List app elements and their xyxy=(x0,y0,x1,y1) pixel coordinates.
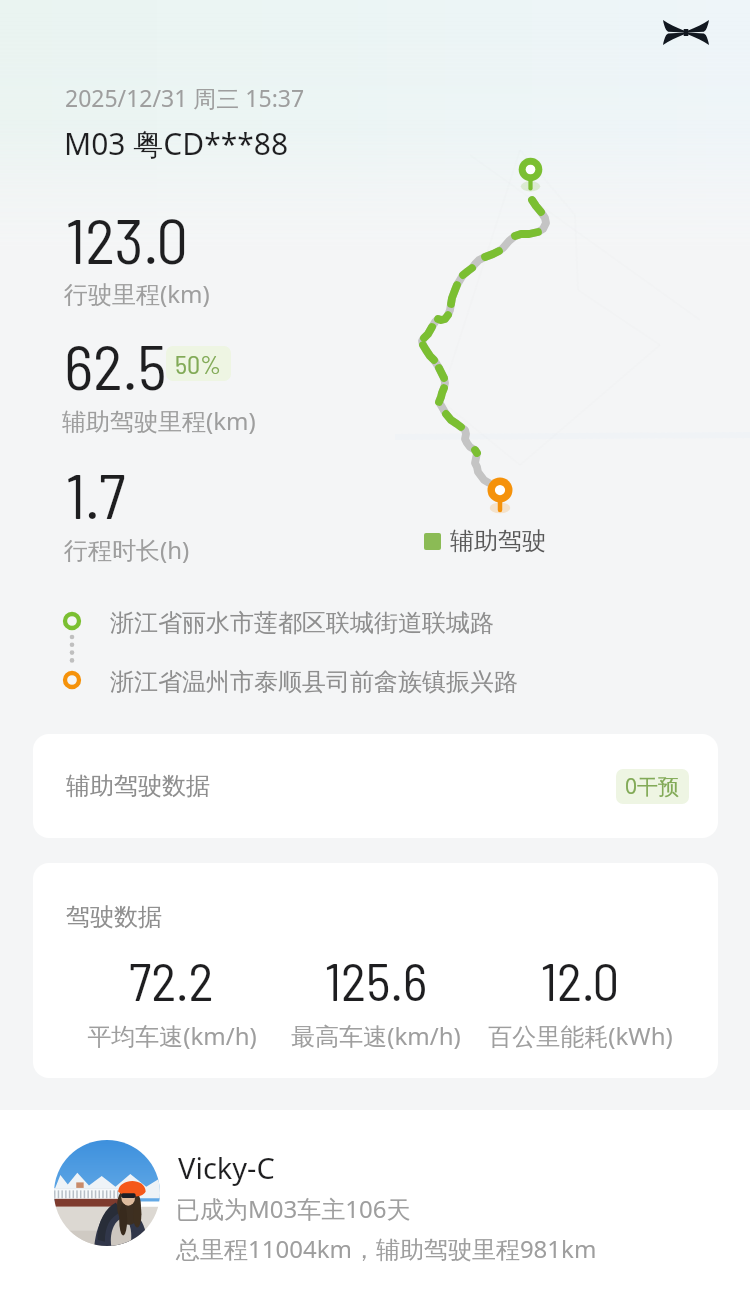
staticText: 123.0 xyxy=(66,201,188,277)
staticText: 125.6 xyxy=(325,948,428,1012)
button[interactable]: 浙江省温州市泰顺县司前畲族镇振兴路 xyxy=(110,667,518,697)
staticText: 总里程11004km，辅助驾驶里程981km xyxy=(176,1232,597,1265)
staticText: 辅助驾驶里程(km) xyxy=(62,404,256,437)
staticText: 行程时长(h) xyxy=(64,533,190,566)
staticText: 2025/12/31 周三 15:37 xyxy=(65,82,305,113)
button[interactable]: 辅助驾驶数据 xyxy=(33,734,718,838)
button[interactable]: 驾驶数据 xyxy=(33,863,718,1078)
staticText: 0干预 xyxy=(625,772,680,801)
staticText: 平均车速(km/h) xyxy=(87,1019,257,1052)
button[interactable]: 浙江省丽水市莲都区联城街道联城路 xyxy=(110,608,494,638)
staticText: Vicky-C xyxy=(178,1148,275,1187)
staticText: 72.2 xyxy=(129,948,214,1012)
staticText: 最高车速(km/h) xyxy=(291,1019,461,1052)
staticText: 驾驶数据 xyxy=(66,902,162,932)
staticText: 浙江省丽水市莲都区联城街道联城路 xyxy=(110,608,494,638)
staticText: 62.5 xyxy=(64,327,167,403)
staticText: 百公里能耗(kWh) xyxy=(488,1019,673,1052)
staticText: 50% xyxy=(175,348,222,379)
button[interactable]: Brand logo xyxy=(650,5,722,59)
button[interactable]: Vicky-C xyxy=(0,1110,750,1300)
staticText: M03 粤CD***88 xyxy=(64,123,289,164)
staticText: 辅助驾驶 xyxy=(450,526,546,556)
staticText: 辅助驾驶数据 xyxy=(66,771,210,801)
staticText: 行驶里程(km) xyxy=(64,277,210,310)
staticText: 12.0 xyxy=(541,948,620,1012)
staticText: 浙江省温州市泰顺县司前畲族镇振兴路 xyxy=(110,667,518,697)
staticText: 已成为M03车主106天 xyxy=(176,1192,411,1225)
staticText: 1.7 xyxy=(66,456,126,532)
